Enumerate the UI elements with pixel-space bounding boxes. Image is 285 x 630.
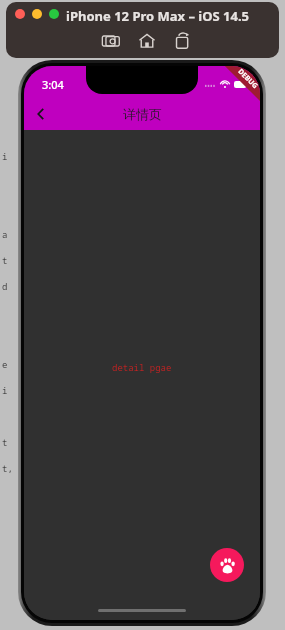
staticText: a bbox=[2, 228, 8, 254]
staticText: t bbox=[2, 254, 8, 280]
staticText: detail pgae bbox=[112, 361, 172, 373]
staticText: i bbox=[2, 150, 8, 176]
button[interactable]: Back bbox=[24, 98, 58, 130]
staticText: iPhone 12 Pro Max – iOS 14.5 bbox=[66, 7, 250, 25]
staticText: t bbox=[2, 436, 8, 462]
button[interactable]: Rotate bbox=[172, 30, 194, 52]
staticText: DEBUG bbox=[236, 67, 260, 91]
button[interactable] bbox=[15, 9, 25, 19]
button[interactable] bbox=[49, 9, 59, 19]
staticText: e bbox=[2, 358, 8, 384]
button[interactable] bbox=[32, 9, 42, 19]
button[interactable]: Home bbox=[136, 30, 158, 52]
staticText: d bbox=[2, 280, 8, 306]
staticText: i bbox=[2, 384, 8, 410]
staticText: 3:04 bbox=[42, 77, 64, 92]
staticText: 详情页 bbox=[123, 106, 162, 122]
staticText: t, bbox=[2, 462, 13, 488]
button[interactable]: Paw action bbox=[210, 548, 244, 582]
button[interactable]: Screenshot bbox=[100, 30, 122, 52]
